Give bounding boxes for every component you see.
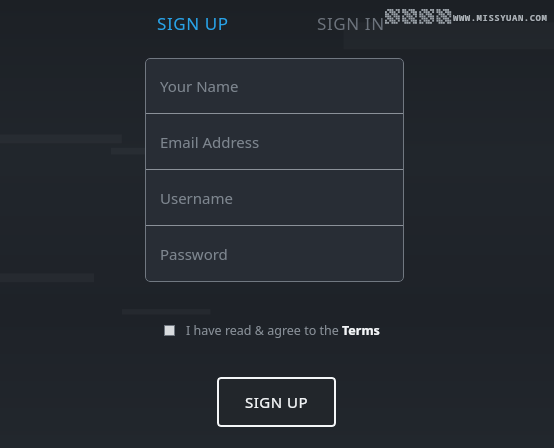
button[interactable]: Your Name	[145, 58, 404, 114]
staticText: Email Address	[160, 132, 260, 152]
button[interactable]: Agree to terms checkbox	[160, 319, 384, 342]
button[interactable]: Username	[145, 170, 404, 226]
button[interactable]: SIGN UP	[217, 377, 336, 427]
button[interactable]: SIGN UP	[155, 10, 231, 37]
button[interactable]: Password	[145, 226, 404, 282]
staticText: I have read & agree to the Terms	[186, 322, 380, 339]
staticText: WWW.MISSYUAN.COM	[453, 11, 548, 23]
staticText: Username	[160, 188, 233, 208]
staticText: Password	[160, 244, 228, 264]
staticText: SIGN UP	[157, 12, 229, 35]
staticText: Your Name	[160, 76, 239, 96]
other: Agree to terms checkbox	[164, 325, 175, 336]
staticText: SIGN UP	[245, 392, 309, 412]
button[interactable]: Email Address	[145, 114, 404, 170]
staticText: SIGN IN	[317, 12, 385, 35]
button[interactable]: SIGN IN	[315, 10, 387, 37]
